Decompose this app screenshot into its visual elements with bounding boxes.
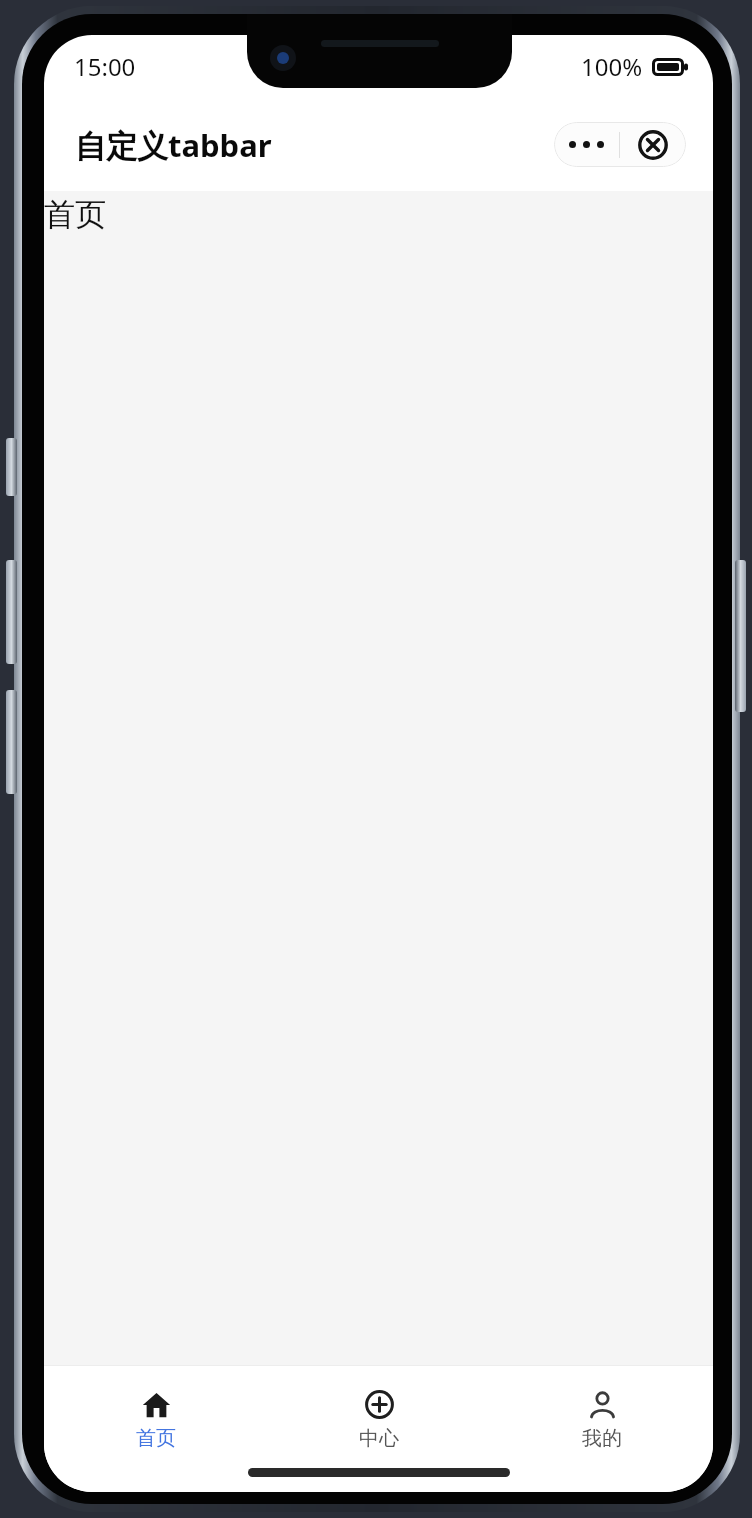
button[interactable]: Close <box>620 122 686 167</box>
button[interactable]: 中心 <box>267 1387 490 1453</box>
button[interactable]: 我的 <box>490 1387 713 1453</box>
staticText: 自定义tabbar <box>75 124 272 166</box>
staticText: 首页 <box>136 1426 176 1451</box>
staticText: @稀土掘金技术社区 <box>501 1455 697 1485</box>
button[interactable]: More options <box>554 122 619 167</box>
staticText: 我的 <box>582 1426 622 1451</box>
staticText: 15:00 <box>74 50 136 83</box>
button[interactable]: 首页 <box>44 1387 267 1453</box>
staticText: 中心 <box>359 1426 399 1451</box>
staticText: 100% <box>581 50 643 83</box>
staticText: 首页 <box>44 195 106 234</box>
